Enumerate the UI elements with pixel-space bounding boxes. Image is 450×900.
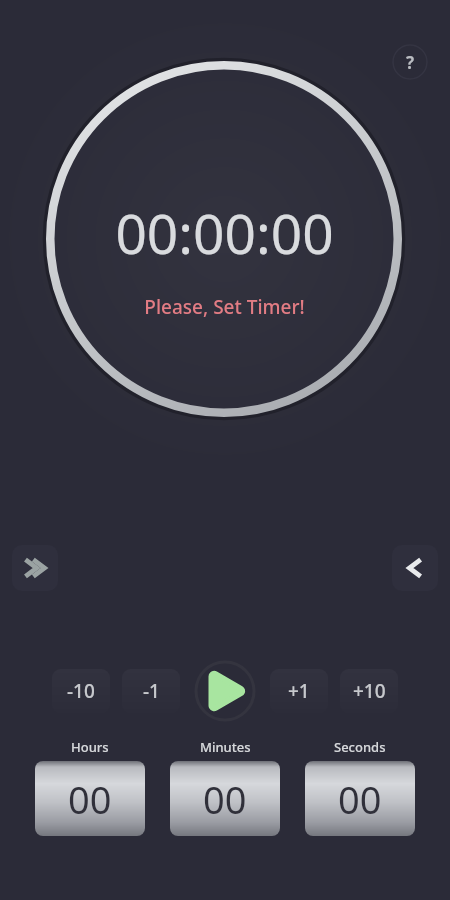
button[interactable]: Back [392,545,438,591]
button[interactable]: -10 [52,669,110,713]
staticText: +10 [353,678,386,704]
staticText: 00 [338,773,382,825]
button[interactable]: 00 [170,761,280,836]
button[interactable]: +1 [270,669,328,713]
staticText: 00:00:00 [115,195,334,270]
staticText: 00 [203,773,247,825]
button[interactable]: Forward [12,545,58,591]
button[interactable]: +10 [340,669,398,713]
staticText: Please, Set Timer! [144,294,305,320]
button[interactable]: 00 [305,761,415,836]
button[interactable]: Help [392,44,428,80]
button[interactable]: -1 [122,669,180,713]
staticText: Minutes [200,738,251,756]
staticText: Hours [71,738,109,756]
staticText: -1 [143,678,160,704]
button[interactable]: Start timer [192,658,258,724]
staticText: +1 [288,678,310,704]
staticText: Seconds [334,738,386,756]
staticText: ? [406,51,415,74]
staticText: 00 [68,773,112,825]
button[interactable]: 00 [35,761,145,836]
staticText: -10 [67,678,95,704]
